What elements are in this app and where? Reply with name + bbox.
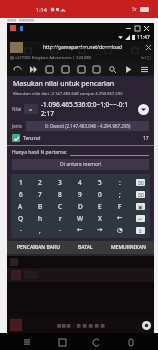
staticText: ↕ [138,228,143,234]
button[interactable]: Key ↕ [130,224,150,236]
button[interactable]: Search memory [59,63,71,75]
staticText: · [59,226,61,235]
button[interactable]: h [30,212,50,224]
button[interactable]: 7 [30,188,50,200]
staticText: E [98,202,102,211]
button[interactable]: Play [122,63,134,75]
button[interactable]: 5 [90,176,110,188]
button[interactable]: C [50,200,70,212]
staticText: 17 [143,135,149,142]
button[interactable] [70,149,149,156]
staticText: D [78,202,83,211]
button[interactable]: Key ⌧ [130,176,150,188]
staticText: ; [119,190,121,199]
button[interactable]: ; [110,188,130,200]
staticText: ← [77,226,83,234]
button[interactable]: 8 [50,188,70,200]
button[interactable]: B [30,200,50,212]
button[interactable]: ← [110,212,130,224]
staticText: BATAL [78,244,93,251]
staticText: h [38,214,43,223]
button[interactable]: · [11,224,30,236]
button[interactable]: List [75,63,87,75]
button[interactable]: Recents [19,334,35,350]
button[interactable]: Di antara memori [12,159,149,170]
button[interactable]: · [50,224,70,236]
staticText: ← [117,214,123,222]
button[interactable]: 3 [50,176,70,188]
staticText: 4 [78,178,82,187]
button[interactable]: W [70,212,90,224]
button[interactable]: Maximize [133,24,142,33]
button[interactable]: MEMURNIKAN [102,241,154,254]
button[interactable]: A [11,200,30,212]
button[interactable]: BATAL [69,241,102,254]
staticText: ▣ [138,204,143,210]
staticText: Masukan nilai untuk pencarian [13,79,115,89]
button[interactable]: Key ⌧ [130,188,150,200]
staticText: 0 [98,190,102,199]
button[interactable]: : [110,176,130,188]
button[interactable]: Menu [138,63,150,75]
staticText: ⌧ [138,192,144,198]
button[interactable]: Key ▣ [130,200,150,212]
staticText: Terurut [23,135,41,142]
staticText: Masukan nilai dari -2.147.483.648 sampai… [13,91,123,97]
staticText: PENCARIAN BARU [17,244,60,251]
button[interactable]: ◔ [110,224,130,236]
staticText: (x) □ [141,55,151,61]
button[interactable]: ← [70,224,90,236]
staticText: Hanya hasil N pertama: [12,149,67,156]
button[interactable]: X [90,212,110,224]
button[interactable]: 4 [70,176,90,188]
button[interactable]: Operator [24,104,38,114]
button[interactable]: 9 [70,188,90,200]
button[interactable]: F [110,200,130,212]
button[interactable]: Fast forward [27,63,39,75]
staticText: Di antara memori [60,161,102,168]
staticText: Q [18,214,24,223]
staticText: A [18,202,23,211]
button[interactable]: Copy [90,63,102,75]
staticText: ▤ v2/7002 Kingkun Adventures | 324 MB [10,55,91,61]
staticText: 5г [132,6,138,13]
button[interactable]: , [30,224,50,236]
staticText: 1 [19,178,23,187]
staticText: Nilai [12,106,22,112]
button[interactable]: E [90,200,110,212]
button[interactable]: Q [11,212,30,224]
button[interactable]: 2 [30,176,50,188]
staticText: 11:47 [137,34,150,41]
button[interactable]: → [90,224,110,236]
button[interactable]: Minimize [124,24,133,33]
staticText: : [119,178,121,187]
staticText: -1.096.465.536:0:0~1;0~~-0:1 [41,100,129,109]
staticText: ■■■ - ■■■■■ [7,18,34,22]
button[interactable]: Dropdown [138,104,149,115]
button[interactable]: Ad info [142,321,151,330]
button[interactable]: 6 [11,188,30,200]
button[interactable]: Key ↵ [130,212,150,224]
button[interactable]: Home [54,334,70,350]
staticText: ↵ [138,216,143,222]
button[interactable]: Close [142,24,151,33]
button[interactable]: 0: Dword (2.147.483.648 - 4.294.967.295) [26,121,149,131]
button[interactable]: Undo [11,63,23,75]
staticText: 2 [38,178,42,187]
button[interactable]: r [50,212,70,224]
button[interactable]: Back [88,334,104,350]
button[interactable]: Close tab [143,42,154,53]
staticText: Jenis [12,123,22,129]
button[interactable]: D [70,200,90,212]
staticText: 6 [19,190,23,199]
button[interactable]: Voice search [123,334,139,350]
button[interactable]: 1 [11,176,30,188]
staticText: = [29,106,33,113]
button[interactable]: Save [43,63,55,75]
staticText: · [20,226,22,235]
button[interactable]: 0 [90,188,110,200]
button[interactable]: Terurut [12,134,149,142]
button[interactable]: PENCARIAN BARU [7,241,69,254]
staticText: http://gamepardan.net/download [43,44,123,51]
button[interactable]: Find [106,63,118,75]
